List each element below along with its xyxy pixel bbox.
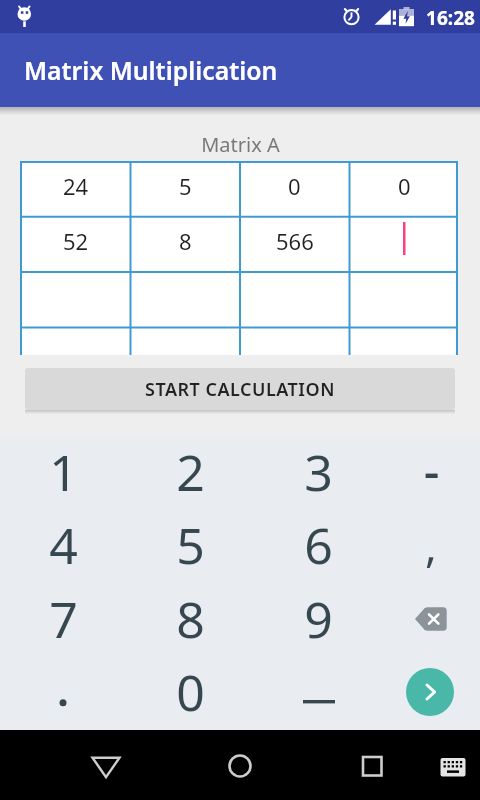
button[interactable]: 2 <box>126 437 254 510</box>
button[interactable]: 566 <box>241 218 348 273</box>
button[interactable] <box>76 735 136 795</box>
button[interactable]: 5 <box>132 163 239 218</box>
staticText: 16:28 <box>426 5 475 31</box>
button[interactable]: 52 <box>22 218 129 273</box>
button[interactable] <box>210 735 270 795</box>
staticText: 24 <box>63 171 89 201</box>
button[interactable]: 9 <box>254 584 382 657</box>
staticText: 0 <box>176 658 205 726</box>
staticText: Matrix A <box>201 131 280 158</box>
button[interactable] <box>241 273 348 328</box>
button[interactable]: 8 <box>126 584 254 657</box>
staticText: 8 <box>176 585 205 653</box>
button[interactable] <box>0 657 126 730</box>
button[interactable]: 8 <box>132 218 239 273</box>
button[interactable] <box>132 273 239 328</box>
button[interactable] <box>351 273 458 328</box>
button[interactable]: 3 <box>254 437 382 510</box>
button[interactable] <box>342 735 402 795</box>
button[interactable] <box>351 218 458 273</box>
button[interactable] <box>22 328 129 355</box>
button[interactable]: , <box>382 510 480 583</box>
button[interactable] <box>428 742 478 792</box>
staticText: 52 <box>63 226 89 256</box>
staticText: Matrix Multiplication <box>24 53 278 87</box>
button[interactable] <box>382 437 480 510</box>
staticText: 3 <box>304 438 333 506</box>
button[interactable]: 0 <box>241 163 348 218</box>
staticText: 5 <box>179 171 192 201</box>
staticText: 5 <box>176 511 205 579</box>
staticText: 0 <box>398 171 411 201</box>
staticText: 1 <box>49 438 78 506</box>
button[interactable]: 24 <box>22 163 129 218</box>
button[interactable] <box>254 657 382 730</box>
button[interactable]: 6 <box>254 510 382 583</box>
button[interactable]: 0 <box>351 163 458 218</box>
staticText: 6 <box>304 511 333 579</box>
staticText: START CALCULATION <box>145 377 335 402</box>
button[interactable] <box>132 328 239 355</box>
staticText: , <box>425 515 437 575</box>
button[interactable] <box>241 328 348 355</box>
staticText: 2 <box>176 438 205 506</box>
button[interactable]: 5 <box>126 510 254 583</box>
staticText: 566 <box>276 226 314 256</box>
staticText: 7 <box>49 585 78 653</box>
staticText: 8 <box>179 226 192 256</box>
button[interactable]: 7 <box>0 584 126 657</box>
button[interactable]: 4 <box>0 510 126 583</box>
button[interactable]: 1 <box>0 437 126 510</box>
button[interactable]: 0 <box>126 657 254 730</box>
button[interactable] <box>382 584 480 657</box>
staticText: 4 <box>49 511 78 579</box>
button[interactable] <box>22 273 129 328</box>
staticText: 9 <box>304 585 333 653</box>
staticText: 0 <box>288 171 301 201</box>
button[interactable]: START CALCULATION <box>25 368 455 410</box>
button[interactable] <box>351 328 458 355</box>
button[interactable] <box>406 668 454 716</box>
